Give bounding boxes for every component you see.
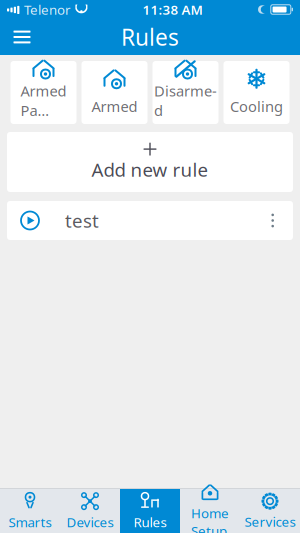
staticText: Cooling	[230, 96, 283, 116]
button[interactable]: Home Setup	[180, 489, 240, 533]
staticText: Rules	[133, 513, 166, 531]
staticText: Telenor	[24, 1, 71, 18]
button[interactable]: Rules	[120, 489, 180, 533]
staticText: Disarmed	[154, 81, 217, 120]
staticText: test	[65, 208, 99, 233]
button[interactable]: Add new rule	[7, 132, 293, 192]
button[interactable]: test	[7, 201, 293, 240]
button[interactable]: Disarmed	[152, 61, 218, 124]
button[interactable]: Cooling	[223, 61, 289, 124]
button[interactable]: Services	[240, 489, 300, 533]
staticText: Armed	[91, 96, 137, 116]
staticText: Armed Pa…	[20, 81, 66, 120]
staticText: Devices	[66, 513, 113, 531]
button[interactable]: Devices	[60, 489, 120, 533]
button[interactable]: Menu	[0, 19, 44, 55]
staticText: Smarts	[8, 513, 51, 531]
staticText: Rules	[121, 22, 179, 52]
staticText: Home Setup	[191, 504, 229, 533]
staticText: Add new rule	[91, 157, 208, 182]
staticText: 11:38 AM	[143, 1, 203, 18]
button[interactable]: Smarts	[0, 489, 60, 533]
staticText: Services	[244, 513, 295, 530]
button[interactable]: Armed	[81, 61, 147, 124]
button[interactable]: Armed Pa…	[10, 61, 76, 124]
